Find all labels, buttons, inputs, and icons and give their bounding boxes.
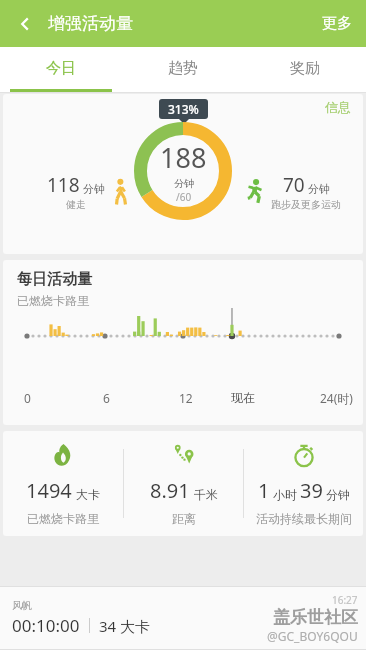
staticText: @GC_BOY6QOU	[267, 628, 358, 644]
staticText: 1	[258, 477, 270, 504]
staticText: 分钟	[326, 487, 350, 502]
button[interactable]: 8.91	[124, 431, 243, 536]
staticText: 已燃烧卡路里	[27, 511, 99, 526]
staticText: 188	[160, 139, 207, 176]
staticText: 跑步及更多运动	[271, 198, 341, 211]
staticText: 小时	[273, 487, 297, 502]
button[interactable]: 奖励	[244, 47, 366, 89]
button[interactable]: 今日	[0, 47, 122, 89]
staticText: 00:10:00	[12, 614, 80, 637]
button[interactable]: Back	[6, 5, 44, 43]
staticText: 34 大卡	[99, 616, 151, 636]
staticText: 313%	[168, 101, 199, 117]
button[interactable]: 风帆	[0, 587, 366, 649]
staticText: 盖乐世社区	[273, 607, 358, 628]
staticText: 大卡	[76, 487, 100, 502]
staticText: 1494	[26, 477, 72, 504]
button[interactable]: 1	[244, 431, 363, 536]
staticText: 增强活动量	[48, 13, 133, 34]
staticText: 分钟	[174, 177, 194, 190]
staticText: 39	[300, 477, 323, 504]
staticText: 风帆	[12, 599, 32, 612]
staticText: 千米	[194, 487, 218, 502]
staticText: 活动持续最长期间	[256, 511, 352, 526]
staticText: 更多	[322, 14, 352, 33]
button[interactable]: 1494	[3, 431, 123, 536]
staticText: 现在	[231, 390, 255, 405]
staticText: 每日活动量	[17, 270, 92, 289]
staticText: 16:27	[332, 593, 358, 607]
staticText: 今日	[46, 59, 76, 78]
button[interactable]: 信息	[313, 94, 363, 120]
staticText: 趋势	[168, 59, 198, 78]
staticText: 6	[103, 390, 110, 406]
staticText: 分钟	[83, 182, 105, 196]
staticText: 12	[179, 390, 193, 406]
staticText: /60	[176, 190, 192, 204]
staticText: 分钟	[308, 182, 330, 196]
staticText: 0	[24, 390, 31, 406]
staticText: 24(时)	[320, 390, 353, 406]
button[interactable]: 更多	[308, 4, 366, 43]
staticText: 118	[47, 172, 80, 198]
staticText: 奖励	[290, 59, 320, 78]
staticText: 信息	[325, 99, 351, 115]
staticText: 健走	[66, 198, 86, 211]
staticText: 距离	[172, 511, 196, 526]
staticText: 8.91	[150, 477, 190, 504]
staticText: 70	[283, 172, 305, 198]
button[interactable]: 趋势	[122, 47, 244, 89]
staticText: 已燃烧卡路里	[17, 293, 89, 308]
